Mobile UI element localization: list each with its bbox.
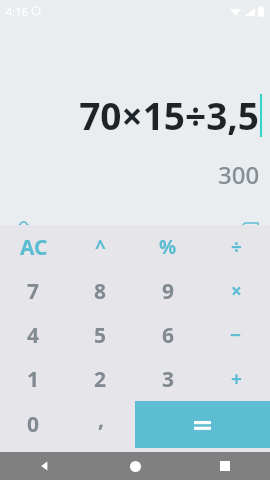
- staticText: %: [159, 234, 177, 260]
- button[interactable]: ×: [202, 269, 270, 313]
- button[interactable]: %: [134, 225, 202, 269]
- button[interactable]: 5: [67, 313, 134, 357]
- staticText: ×: [231, 278, 242, 304]
- button[interactable]: Back: [0, 452, 90, 480]
- button[interactable]: AC: [0, 225, 67, 269]
- button[interactable]: 0: [0, 401, 67, 448]
- button[interactable]: −: [202, 313, 270, 357]
- button[interactable]: Rotate screen: [12, 215, 38, 241]
- button[interactable]: ^: [67, 225, 134, 269]
- button[interactable]: 4: [0, 313, 67, 357]
- staticText: 4:16: [6, 4, 28, 19]
- button[interactable]: 6: [134, 313, 202, 357]
- button[interactable]: ,: [67, 401, 135, 448]
- button[interactable]: 7: [0, 269, 67, 313]
- staticText: +: [231, 366, 242, 392]
- staticText: 8: [94, 277, 107, 306]
- staticText: 0: [27, 410, 40, 439]
- button[interactable]: 2: [67, 357, 134, 401]
- staticText: ^: [95, 234, 106, 260]
- button[interactable]: 9: [134, 269, 202, 313]
- button[interactable]: Home: [90, 452, 180, 480]
- staticText: 4: [27, 321, 40, 350]
- button[interactable]: 8: [67, 269, 134, 313]
- button[interactable]: [135, 401, 270, 448]
- button[interactable]: ÷: [202, 225, 270, 269]
- button[interactable]: 1: [0, 357, 67, 401]
- button[interactable]: +: [202, 357, 270, 401]
- staticText: 70×15÷3,5: [79, 90, 259, 140]
- staticText: 1: [27, 365, 40, 394]
- button[interactable]: 3: [134, 357, 202, 401]
- button[interactable]: Recent apps: [180, 452, 270, 480]
- staticText: AC: [20, 233, 48, 262]
- staticText: ÷: [231, 234, 242, 260]
- staticText: 5: [94, 321, 107, 350]
- staticText: 3: [162, 365, 175, 394]
- staticText: 9: [162, 277, 175, 306]
- staticText: 300: [218, 158, 260, 191]
- staticText: 2: [94, 365, 107, 394]
- staticText: 6: [162, 321, 175, 350]
- staticText: ,: [98, 405, 104, 434]
- staticText: −: [230, 322, 242, 348]
- button[interactable]: Backspace: [234, 216, 262, 244]
- staticText: 7: [27, 277, 40, 306]
